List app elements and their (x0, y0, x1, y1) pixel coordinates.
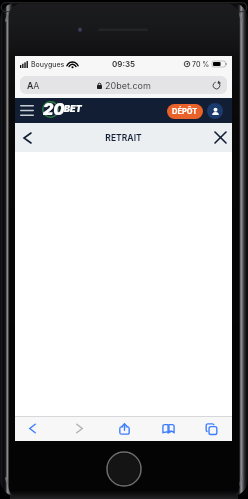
button[interactable]: Account (207, 103, 223, 119)
staticText: 20bet.com (105, 80, 151, 91)
button[interactable]: Back (16, 416, 48, 441)
staticText: BET (64, 103, 82, 114)
button[interactable]: Tabs (195, 416, 227, 441)
button[interactable]: 𝐀A (20, 76, 227, 94)
button[interactable]: Bookmarks (152, 416, 184, 441)
staticText: 09:35 (112, 59, 136, 69)
button[interactable]: Share (108, 416, 140, 441)
staticText: 70 % (192, 60, 210, 68)
staticText: 𝐀A (27, 80, 40, 91)
other: Reload (212, 81, 221, 90)
button[interactable]: 20 (41, 98, 98, 123)
staticText: DÉPÔT (172, 107, 198, 116)
button[interactable]: Home (107, 452, 141, 486)
staticText: RETRAIT (105, 133, 142, 143)
button[interactable]: Close (208, 123, 232, 152)
button[interactable]: DÉPÔT (167, 104, 203, 119)
staticText: Bouygues (31, 60, 65, 68)
staticText: 20 (43, 99, 65, 118)
button[interactable]: Back (15, 123, 39, 152)
button[interactable]: Forward (63, 416, 95, 441)
button[interactable]: Menu (17, 98, 37, 123)
